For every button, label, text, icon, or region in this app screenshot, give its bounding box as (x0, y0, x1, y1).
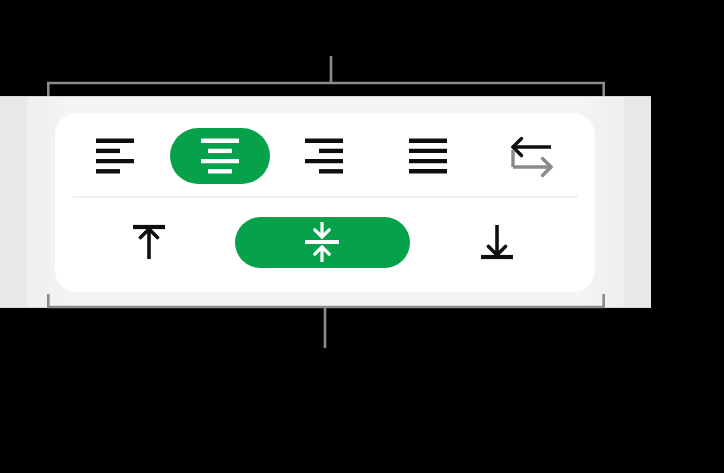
button[interactable]: Text direction (502, 128, 562, 184)
button[interactable]: Align bottom (467, 216, 527, 268)
button[interactable]: Align middle (235, 217, 410, 268)
button[interactable]: Align left (85, 128, 145, 184)
button[interactable]: Justify (398, 128, 458, 184)
button[interactable]: Align center (170, 128, 270, 184)
button[interactable]: Align right (294, 128, 354, 184)
button[interactable]: Align top (119, 216, 179, 268)
